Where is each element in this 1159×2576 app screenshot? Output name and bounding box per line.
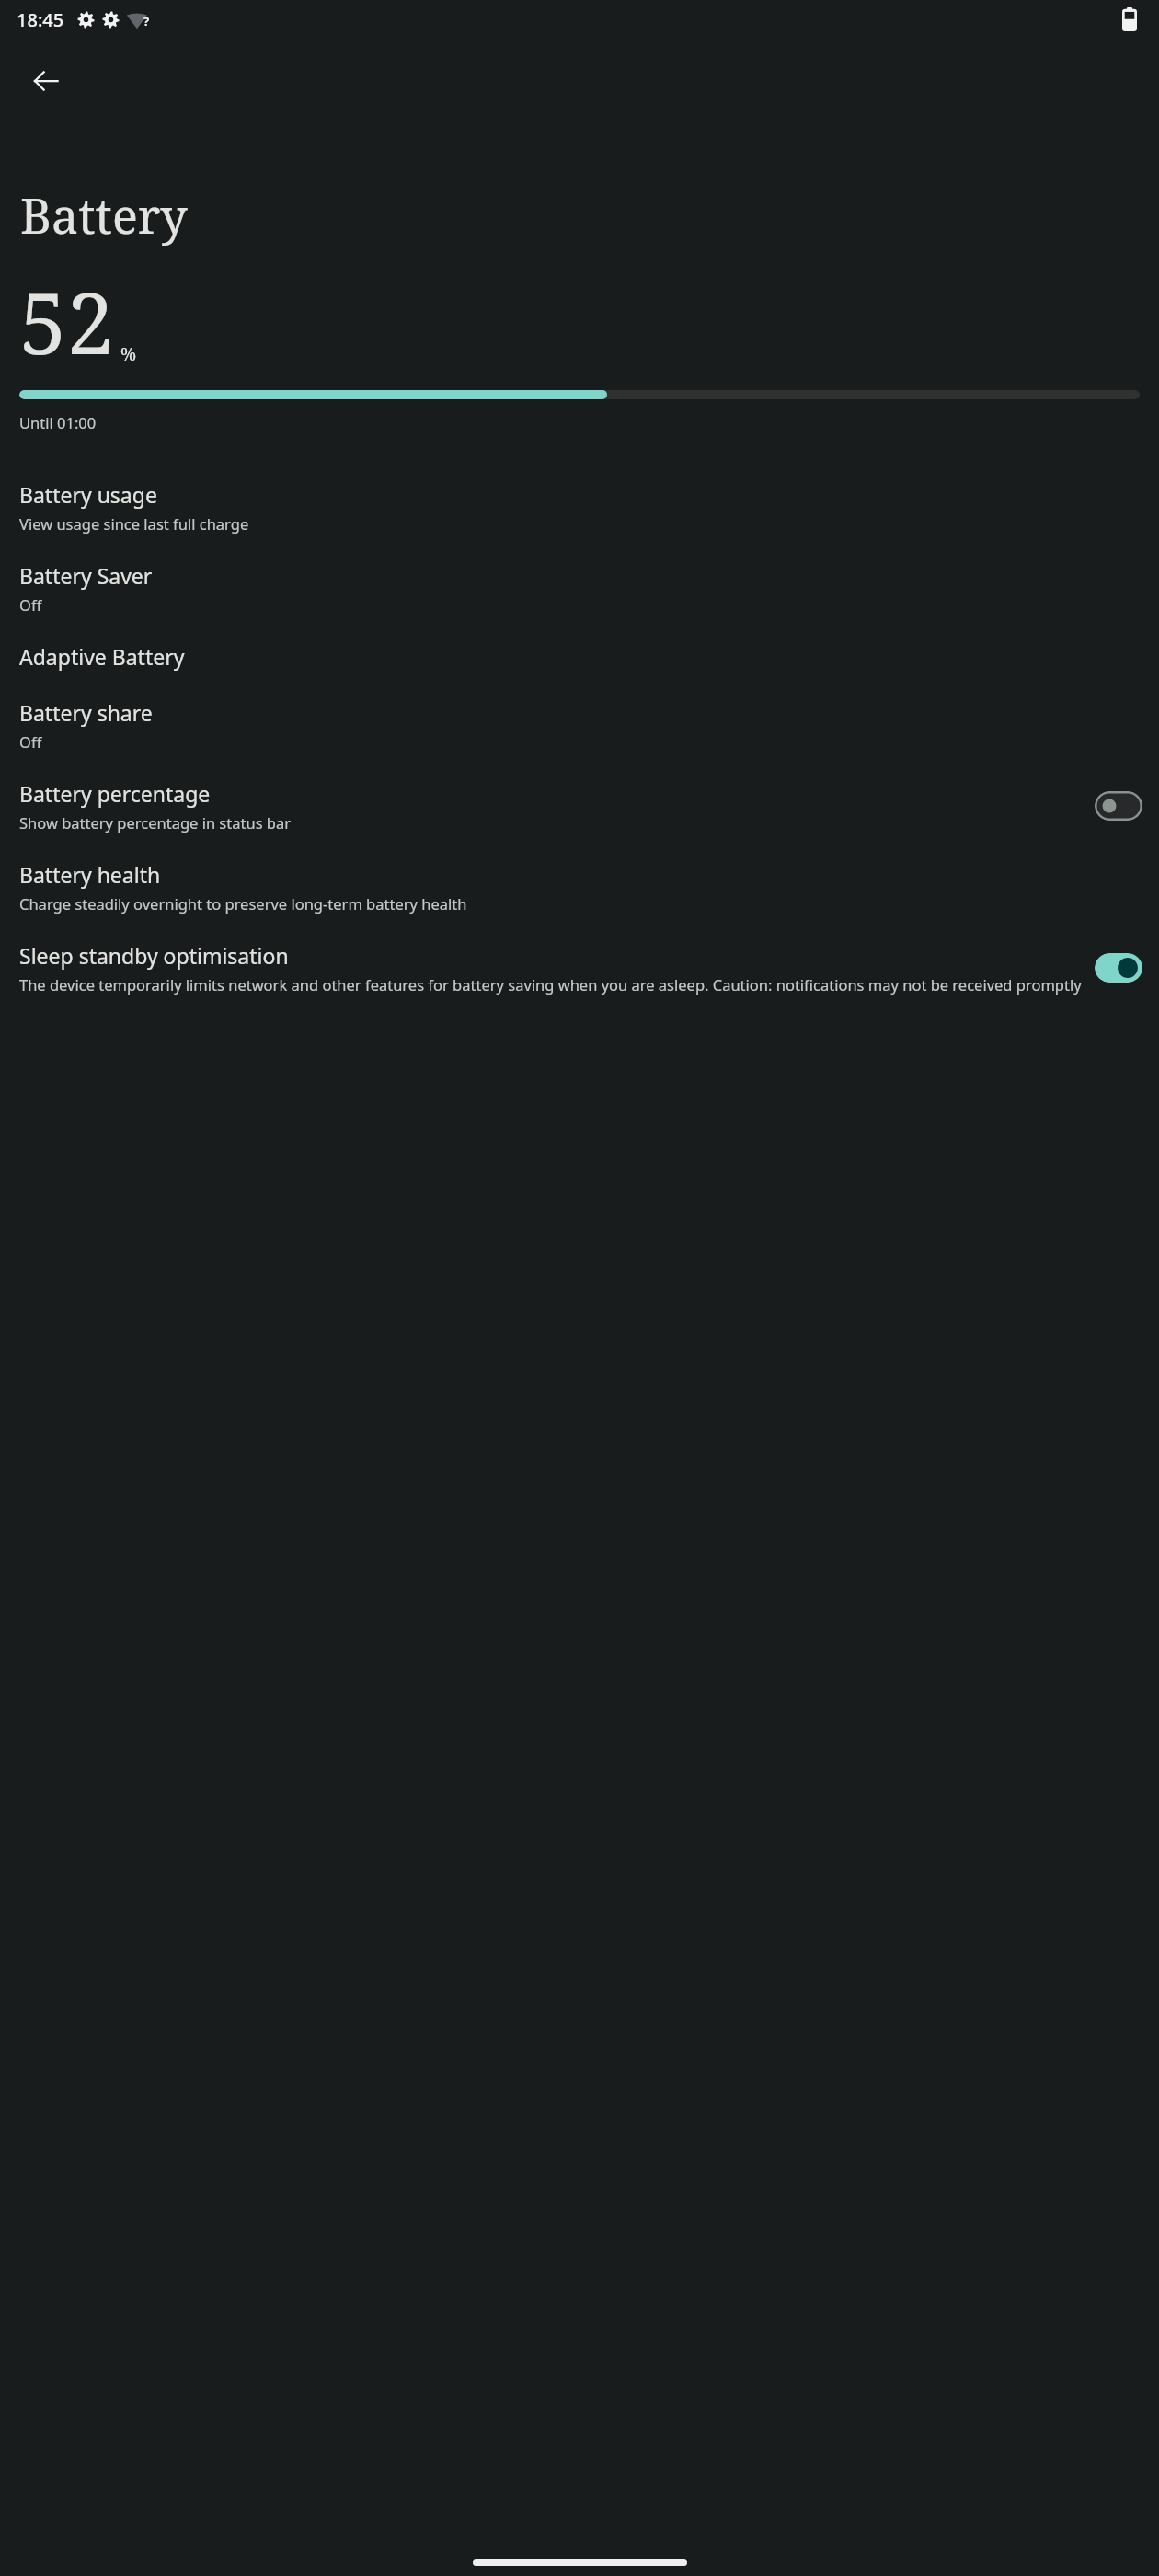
button[interactable]: Back bbox=[20, 55, 72, 107]
staticText: Battery share bbox=[19, 698, 153, 727]
staticText: 52 bbox=[19, 264, 114, 379]
staticText: View usage since last full charge bbox=[19, 513, 249, 534]
button[interactable]: Toggle off bbox=[1095, 791, 1142, 821]
button[interactable]: Battery percentage bbox=[0, 765, 1159, 846]
button[interactable]: Battery Saver bbox=[0, 547, 1159, 628]
staticText: Off bbox=[19, 731, 42, 752]
button[interactable]: Battery usage bbox=[0, 466, 1159, 547]
staticText: Battery bbox=[20, 182, 188, 247]
staticText: Sleep standby optimisation bbox=[19, 941, 289, 970]
staticText: ? bbox=[143, 13, 150, 29]
staticText: Until 01:00 bbox=[19, 412, 97, 432]
staticText: Battery Saver bbox=[19, 561, 153, 590]
staticText: Battery usage bbox=[19, 480, 157, 509]
staticText: Show battery percentage in status bar bbox=[19, 812, 292, 833]
staticText: Battery health bbox=[19, 860, 161, 889]
button[interactable]: Battery share bbox=[0, 684, 1159, 765]
staticText: % bbox=[120, 342, 137, 366]
staticText: Charge steadily overnight to preserve lo… bbox=[19, 893, 467, 914]
staticText: Battery percentage bbox=[19, 779, 211, 808]
button[interactable]: Battery health bbox=[0, 846, 1159, 927]
staticText: Off bbox=[19, 594, 42, 615]
staticText: The device temporarily limits network an… bbox=[19, 974, 1082, 995]
staticText: 18:45 bbox=[17, 7, 64, 32]
button[interactable]: Sleep standby optimisation bbox=[0, 927, 1159, 1008]
staticText: Adaptive Battery bbox=[19, 642, 185, 671]
button[interactable]: Toggle on bbox=[1095, 953, 1142, 983]
button[interactable]: Adaptive Battery bbox=[0, 628, 1159, 684]
